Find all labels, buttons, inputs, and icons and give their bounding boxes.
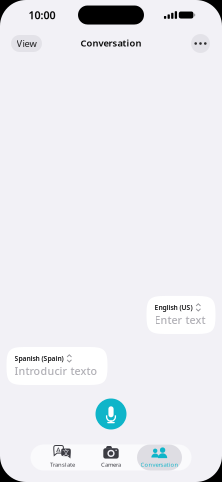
button[interactable]: A	[40, 444, 85, 470]
staticText: Enter text	[154, 313, 205, 327]
staticText: 10:00	[28, 8, 55, 22]
button[interactable]: Start recording	[95, 398, 126, 429]
staticText: Conversation	[80, 37, 141, 49]
button[interactable]: More options	[191, 34, 210, 53]
button[interactable]: Camera	[88, 444, 133, 470]
staticText: Spanish (Spain)	[14, 354, 63, 363]
staticText: 文	[62, 448, 69, 457]
staticText: English (US)	[154, 303, 192, 312]
staticText: A	[56, 445, 61, 455]
staticText: Conversation	[140, 460, 178, 468]
button[interactable]: Conversation	[137, 444, 182, 470]
staticText: Camera	[101, 460, 121, 468]
staticText: View	[16, 37, 36, 50]
staticText: Introducir texto	[14, 364, 97, 378]
button[interactable]: View	[11, 35, 42, 52]
staticText: Translate	[50, 460, 75, 468]
